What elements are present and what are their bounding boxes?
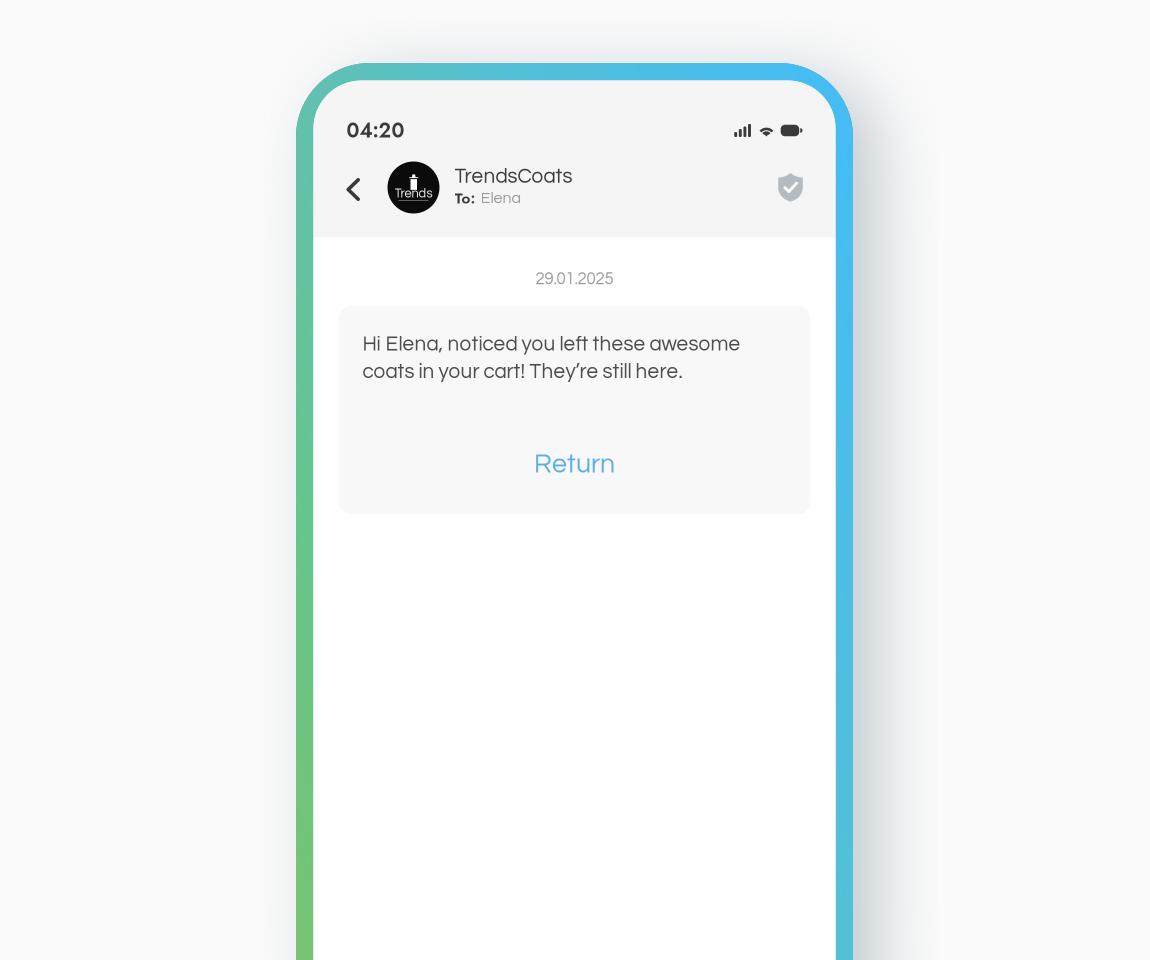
- button[interactable]: Back: [333, 160, 373, 214]
- staticText: 04:20: [346, 116, 404, 145]
- staticText: To:: [454, 187, 475, 209]
- staticText: Trends: [394, 187, 432, 200]
- staticText: TrendsCoats: [454, 166, 572, 187]
- staticText: Elena: [480, 190, 521, 206]
- button[interactable]: Verified sender: [770, 160, 810, 214]
- staticText: Return: [534, 450, 615, 478]
- button[interactable]: Return: [362, 447, 786, 481]
- button[interactable]: Trends: [387, 161, 572, 213]
- staticText: Hi Elena, noticed you left these awesome: [362, 334, 740, 355]
- staticText: 29.01.2025: [535, 270, 613, 288]
- staticText: coats in your cart! They’re still here.: [362, 361, 682, 382]
